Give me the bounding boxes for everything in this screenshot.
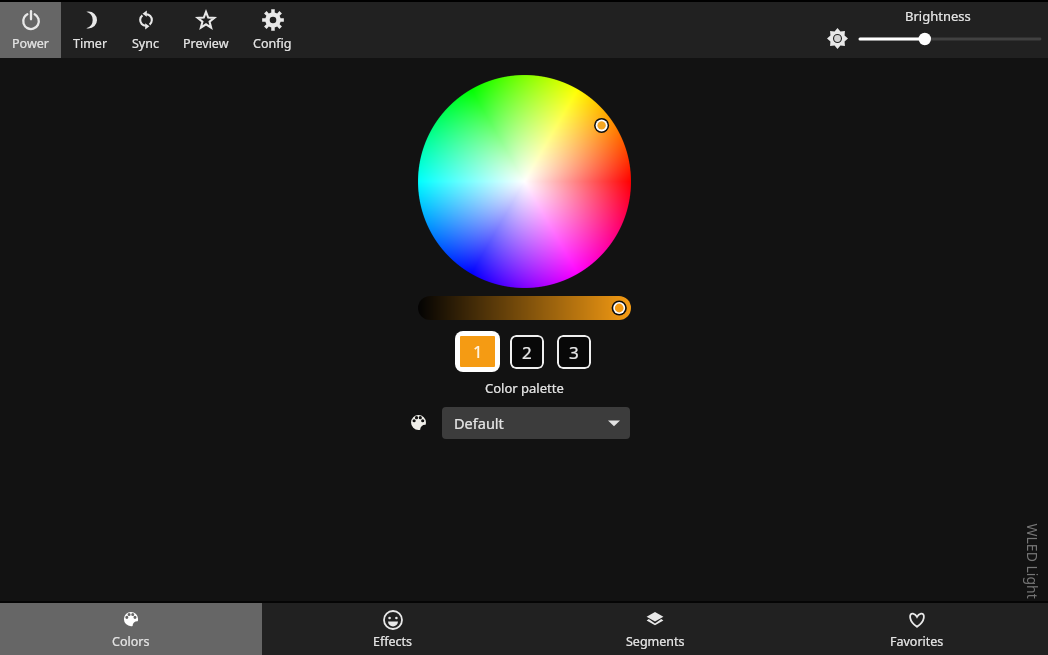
- button[interactable]: Colors: [0, 603, 262, 655]
- button[interactable]: Palette: [408, 413, 429, 434]
- staticText: Config: [253, 35, 292, 52]
- button[interactable]: Default: [442, 407, 630, 439]
- button[interactable]: 2: [510, 335, 544, 369]
- button[interactable]: 1: [455, 331, 500, 372]
- button[interactable]: Preview: [171, 1, 241, 58]
- button[interactable]: Brightness slider: [854, 29, 1046, 49]
- staticText: Colors: [112, 633, 150, 650]
- button[interactable]: Power: [0, 1, 61, 58]
- staticText: Sync: [132, 35, 159, 52]
- button[interactable]: Timer: [61, 1, 120, 58]
- button[interactable]: Favorites: [786, 603, 1048, 655]
- staticText: Brightness: [905, 7, 971, 25]
- staticText: Preview: [183, 35, 229, 52]
- staticText: 2: [522, 341, 532, 364]
- button[interactable]: Sync: [120, 1, 171, 58]
- button[interactable]: Color brightness: [418, 296, 631, 320]
- button[interactable]: Config: [241, 1, 304, 58]
- button[interactable]: Segments: [524, 603, 786, 655]
- staticText: Favorites: [890, 633, 944, 650]
- staticText: WLED Light: [1022, 523, 1041, 599]
- staticText: Default: [454, 413, 504, 433]
- staticText: Effects: [373, 633, 413, 650]
- staticText: 3: [569, 341, 579, 364]
- staticText: 1: [473, 340, 483, 363]
- staticText: Color palette: [485, 379, 564, 397]
- button[interactable]: Effects: [262, 603, 524, 655]
- staticText: Timer: [73, 35, 108, 52]
- staticText: Power: [12, 35, 49, 52]
- staticText: Segments: [626, 633, 685, 650]
- button[interactable]: Brightness: [827, 28, 848, 49]
- button[interactable]: 3: [557, 335, 591, 369]
- button[interactable]: Color wheel: [418, 75, 631, 288]
